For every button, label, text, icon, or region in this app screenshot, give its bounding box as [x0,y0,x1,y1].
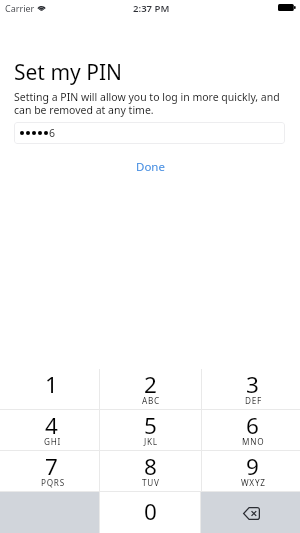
staticText: GHI [44,436,62,447]
staticText: Carrier [5,2,35,14]
staticText: 0 [144,496,157,527]
button[interactable]: Delete [201,492,300,533]
staticText: DEF [245,395,263,406]
staticText: Setting a PIN will allow you to log in m… [14,90,300,117]
button[interactable]: 4 [0,410,99,450]
button[interactable]: 6 [201,410,300,450]
button[interactable]: 2 [99,369,201,409]
staticText: 6 [49,126,56,140]
staticText: PQRS [41,477,65,488]
staticText: ABC [142,395,160,406]
staticText: 8 [144,451,157,482]
staticText: 7 [45,451,58,482]
staticText: 4 [45,410,58,441]
staticText: JKL [144,436,158,447]
button[interactable]: 1 [0,369,99,409]
button[interactable]: 6 [14,122,285,144]
button[interactable]: 9 [201,451,300,491]
staticText: 1 [45,369,58,400]
staticText: 6 [246,410,259,441]
staticText: TUV [142,477,160,488]
staticText: MNO [242,436,265,447]
button[interactable]: 0 [99,492,201,533]
button[interactable]: 8 [99,451,201,491]
staticText: 9 [246,451,259,482]
button[interactable]: 5 [99,410,201,450]
staticText: 2 [144,369,157,400]
button[interactable]: 3 [201,369,300,409]
staticText: Done [136,159,165,175]
button[interactable]: 7 [0,451,99,491]
staticText: 3 [246,369,259,400]
button[interactable]: Done [130,155,171,179]
staticText: 2:37 PM [133,2,170,15]
staticText: WXYZ [241,477,266,488]
staticText: Set my PIN [14,58,123,87]
staticText: 5 [144,410,157,441]
